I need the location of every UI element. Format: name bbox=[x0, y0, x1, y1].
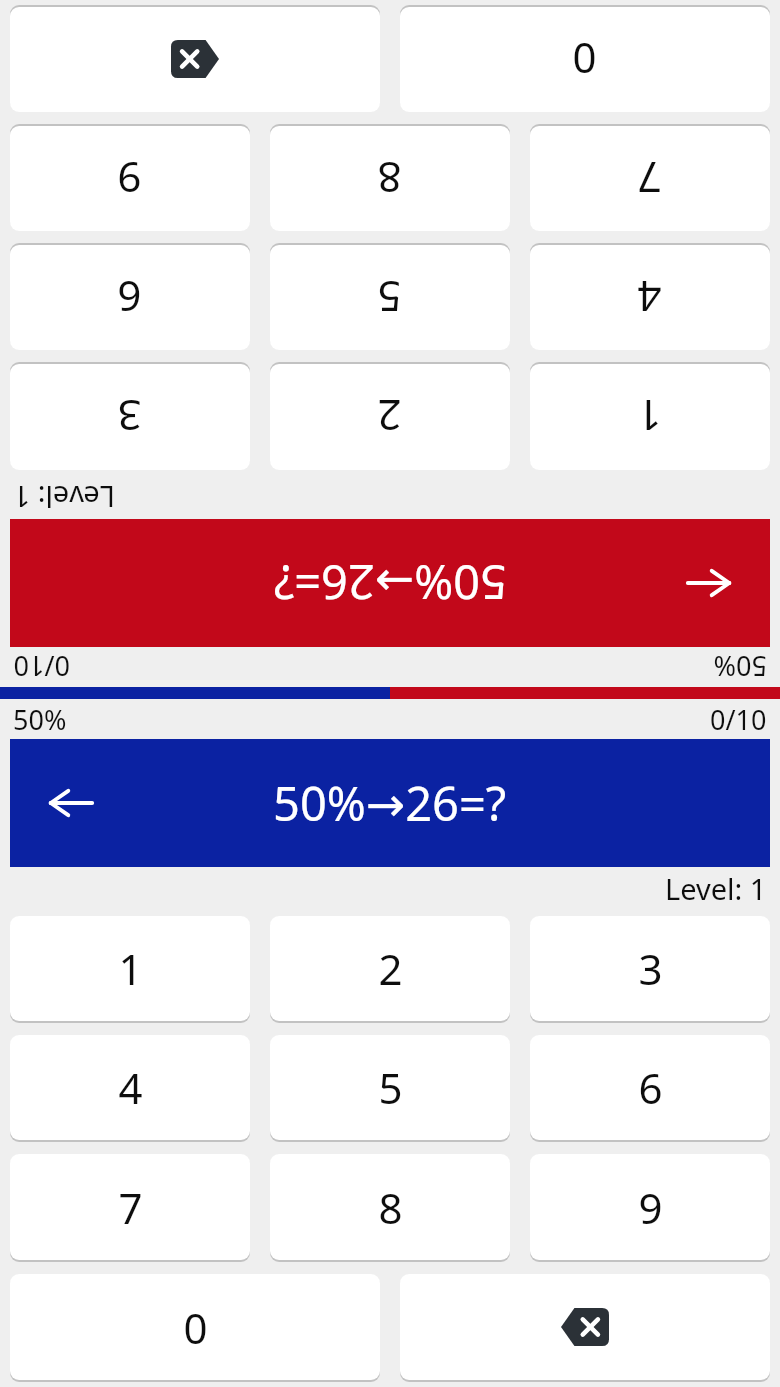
staticText: 50%→26=? bbox=[273, 551, 507, 615]
staticText: 3 bbox=[117, 388, 142, 445]
staticText: 8 bbox=[378, 1179, 403, 1236]
staticText: 7 bbox=[637, 150, 662, 207]
staticText: 5 bbox=[378, 1059, 403, 1116]
staticText: 0/10 bbox=[13, 648, 70, 685]
button[interactable]: 50%→26=? bbox=[10, 739, 770, 867]
button[interactable]: 8 bbox=[270, 1154, 510, 1260]
staticText: 6 bbox=[638, 1059, 663, 1116]
button[interactable]: 0 bbox=[10, 1274, 380, 1380]
staticText: 2 bbox=[377, 388, 402, 445]
staticText: 0 bbox=[572, 31, 597, 88]
button[interactable]: 1 bbox=[10, 916, 250, 1021]
button[interactable]: 9 bbox=[10, 126, 250, 231]
button[interactable]: 7 bbox=[10, 1154, 250, 1260]
staticText: 50% bbox=[13, 701, 67, 738]
staticText: 1 bbox=[637, 388, 662, 445]
staticText: 5 bbox=[377, 269, 402, 326]
button[interactable]: 4 bbox=[10, 1035, 250, 1140]
staticText: 50%→26=? bbox=[273, 771, 507, 835]
button[interactable]: 1 bbox=[530, 364, 770, 470]
staticText: 9 bbox=[117, 150, 142, 207]
staticText: 4 bbox=[637, 269, 662, 326]
button[interactable]: 5 bbox=[270, 1035, 510, 1140]
button[interactable]: 0 bbox=[400, 7, 770, 112]
staticText: 3 bbox=[638, 940, 663, 997]
staticText: 50% bbox=[713, 648, 767, 685]
button[interactable]: Backspace bbox=[400, 1274, 770, 1380]
button[interactable]: 3 bbox=[10, 364, 250, 470]
staticText: 8 bbox=[377, 150, 402, 207]
button[interactable]: 6 bbox=[10, 245, 250, 350]
staticText: 1 bbox=[118, 940, 143, 997]
button[interactable]: 3 bbox=[530, 916, 770, 1021]
button[interactable]: 6 bbox=[530, 1035, 770, 1140]
staticText: Level: 1 bbox=[665, 869, 767, 908]
staticText: 7 bbox=[118, 1179, 143, 1236]
button[interactable]: 9 bbox=[530, 1154, 770, 1260]
staticText: 2 bbox=[378, 940, 403, 997]
button[interactable]: 2 bbox=[270, 364, 510, 470]
button[interactable]: 5 bbox=[270, 245, 510, 350]
button[interactable]: Backspace bbox=[10, 7, 380, 112]
button[interactable]: 2 bbox=[270, 916, 510, 1021]
staticText: 9 bbox=[638, 1179, 663, 1236]
staticText: 4 bbox=[118, 1059, 143, 1116]
button[interactable]: 8 bbox=[270, 126, 510, 231]
button[interactable]: 7 bbox=[530, 126, 770, 231]
staticText: 6 bbox=[117, 269, 142, 326]
staticText: Level: 1 bbox=[13, 478, 115, 517]
button[interactable]: 50%→26=? bbox=[10, 519, 770, 647]
staticText: 0 bbox=[183, 1299, 208, 1356]
button[interactable]: 4 bbox=[530, 245, 770, 350]
staticText: 0/10 bbox=[710, 701, 767, 738]
